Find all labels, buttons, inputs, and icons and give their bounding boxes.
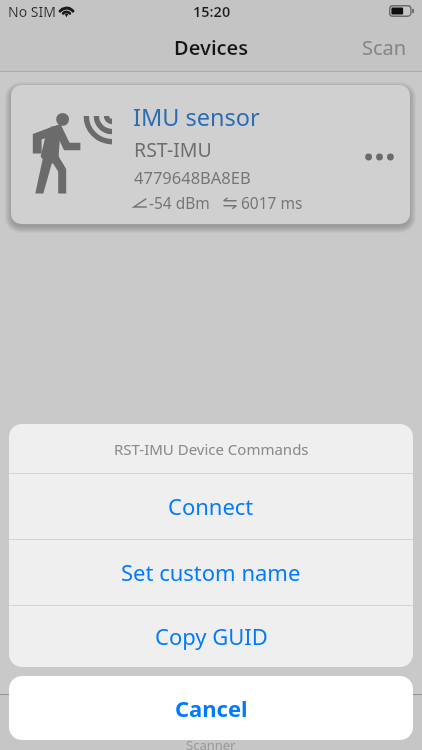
staticText: Scanner (186, 736, 236, 750)
staticText: RST-IMU Device Commands (114, 439, 309, 459)
staticText: Set custom name (121, 557, 301, 587)
button[interactable]: Connect (9, 474, 413, 539)
button[interactable]: Scanner (0, 694, 422, 750)
staticText: Devices (174, 34, 249, 61)
staticText: IMU sensor (133, 101, 260, 133)
button[interactable]: Cancel (9, 676, 413, 740)
staticText: Connect (168, 491, 254, 521)
button[interactable]: IMU sensor (11, 85, 410, 224)
staticText: Cancel (175, 693, 248, 723)
staticText: Copy GUID (155, 621, 268, 651)
staticText: No SIM (8, 2, 56, 21)
button[interactable]: Scan (344, 26, 422, 69)
staticText: 15:20 (193, 1, 231, 21)
staticText: 4779648BA8EB (134, 166, 251, 188)
staticText: RST-IMU (134, 136, 212, 163)
staticText: 6017 ms (241, 192, 303, 213)
button[interactable]: Set custom name (9, 540, 413, 605)
button[interactable]: More options (356, 143, 403, 171)
staticText: -54 dBm (149, 192, 210, 213)
button[interactable]: Copy GUID (9, 606, 413, 667)
staticText: Scan (362, 34, 407, 61)
